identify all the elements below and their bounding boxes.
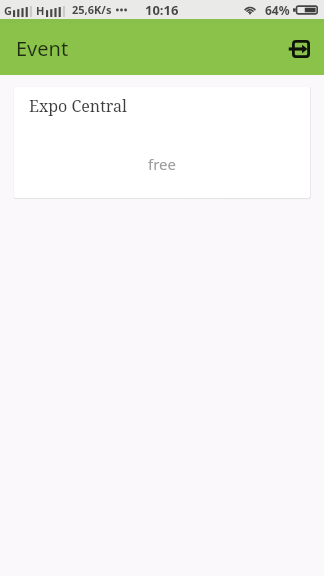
staticText: 64% <box>265 2 290 18</box>
staticText: G <box>4 3 12 18</box>
staticText: H <box>36 3 45 18</box>
staticText: free <box>148 154 176 174</box>
button[interactable]: Expo Central <box>14 87 310 198</box>
staticText: Event <box>16 35 69 62</box>
staticText: 10:16 <box>145 1 179 19</box>
button[interactable]: Log out <box>275 25 323 73</box>
staticText: 25,6K/s <box>72 2 112 17</box>
staticText: Expo Central <box>29 95 127 117</box>
